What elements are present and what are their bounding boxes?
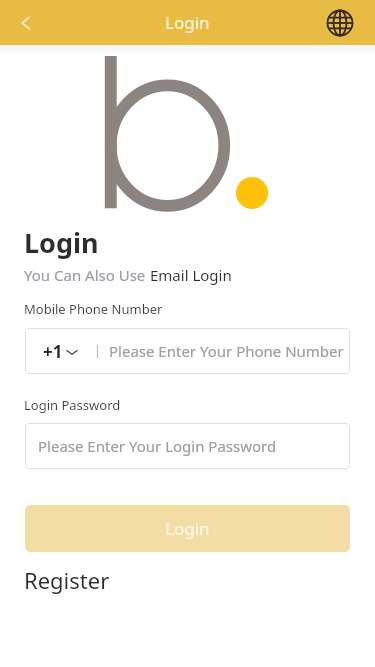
staticText: Please Enter Your Login Password — [38, 436, 277, 456]
staticText: Mobile Phone Number — [24, 300, 163, 318]
staticText: You Can Also Use — [24, 265, 150, 285]
staticText: Login — [24, 224, 99, 261]
button[interactable]: Please Enter Your Login Password — [25, 423, 350, 469]
button[interactable]: Login — [25, 505, 350, 552]
button[interactable]: Email Login — [150, 265, 232, 285]
button[interactable]: Register — [24, 565, 110, 595]
staticText: Register — [24, 565, 110, 595]
button[interactable]: Select country code — [25, 328, 350, 374]
button[interactable]: Back — [2, 0, 47, 45]
staticText: Login — [165, 517, 210, 540]
staticText: Please Enter Your Phone Number — [109, 341, 344, 361]
button[interactable]: Language — [317, 0, 362, 45]
staticText: +1 — [43, 340, 63, 363]
staticText: Email Login — [150, 265, 232, 285]
staticText: Login — [165, 11, 210, 34]
button[interactable]: Select country code — [25, 340, 97, 363]
staticText: Login Password — [24, 396, 121, 414]
